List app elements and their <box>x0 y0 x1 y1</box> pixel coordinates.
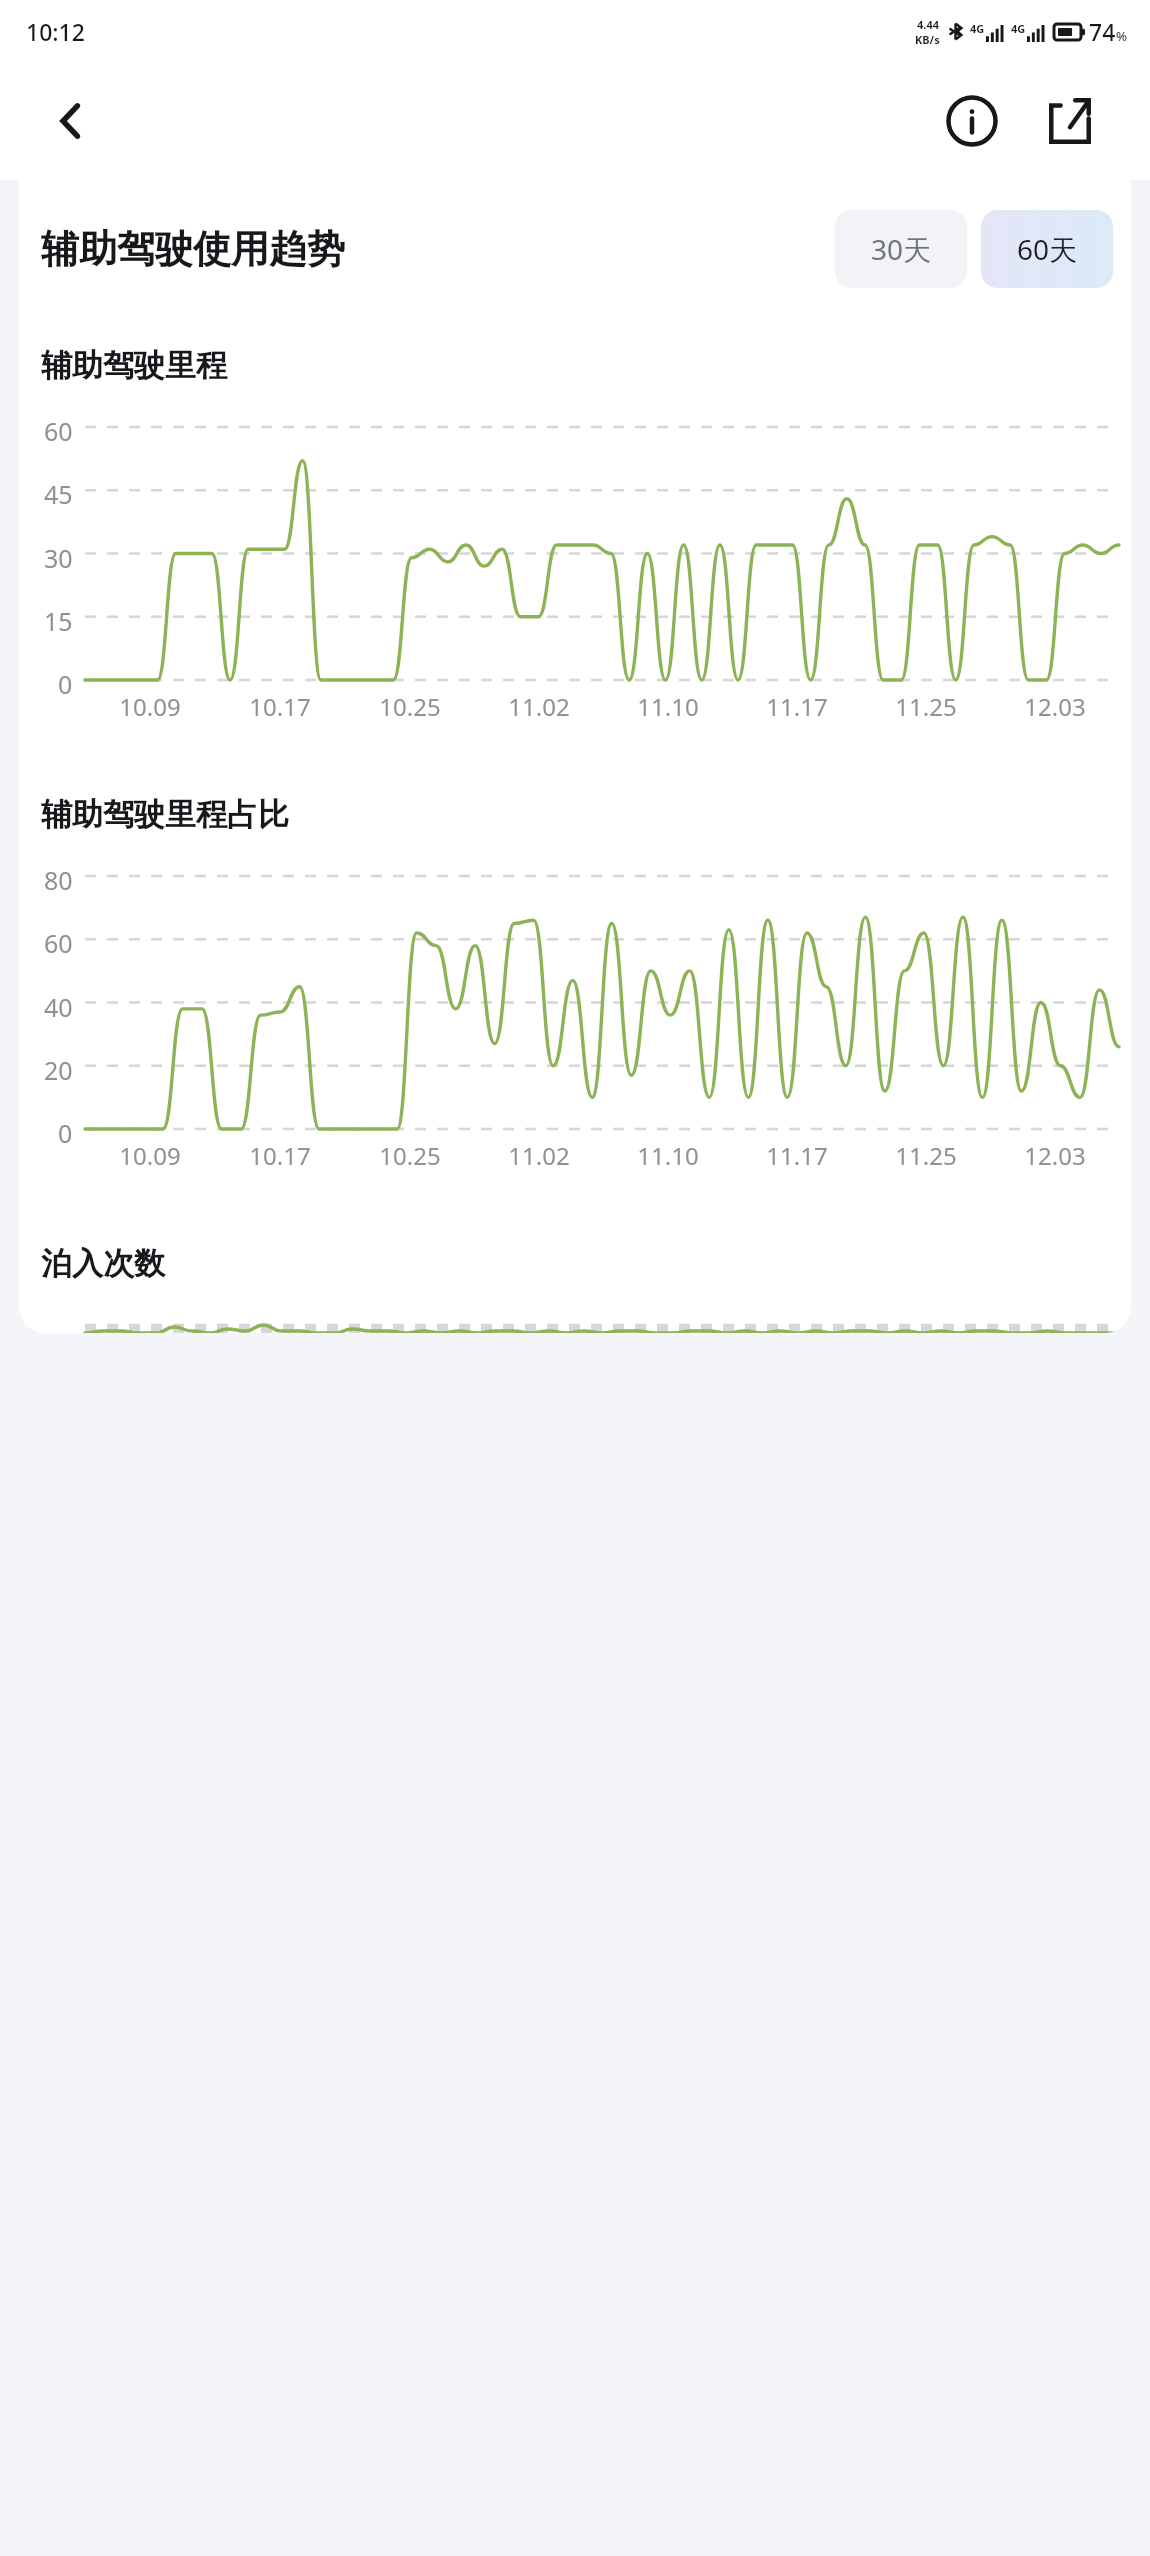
button[interactable]: Info <box>936 85 1008 157</box>
staticText: 40 <box>44 990 73 1024</box>
button[interactable]: 30天 <box>835 210 967 288</box>
staticText: 辅助驾驶里程 <box>41 346 227 385</box>
staticText: % <box>1116 27 1128 45</box>
staticText: 0 <box>58 667 73 701</box>
staticText: 12.03 <box>1024 1139 1086 1172</box>
staticText: 11.25 <box>895 690 957 723</box>
staticText: 12.03 <box>1024 690 1086 723</box>
staticText: 11.17 <box>766 690 828 723</box>
staticText: 10:12 <box>26 16 85 47</box>
staticText: 74 <box>1089 16 1116 47</box>
staticText: 4G <box>970 21 985 36</box>
staticText: 60 <box>44 414 73 448</box>
staticText: 10.17 <box>249 690 311 723</box>
staticText: 11.25 <box>895 1139 957 1172</box>
staticText: 10.17 <box>249 1139 311 1172</box>
staticText: 辅助驾驶使用趋势 <box>41 225 345 273</box>
staticText: 4.44 <box>917 17 939 32</box>
staticText: 11.02 <box>508 690 570 723</box>
button[interactable]: Share <box>1034 85 1106 157</box>
staticText: 11.17 <box>766 1139 828 1172</box>
staticText: 20 <box>44 1053 73 1087</box>
staticText: 泊入次数 <box>41 1244 165 1283</box>
staticText: 10.09 <box>119 1139 181 1172</box>
staticText: 0 <box>58 1116 73 1150</box>
staticText: 30 <box>44 541 73 575</box>
staticText: 10.25 <box>379 690 441 723</box>
button[interactable]: Back <box>36 86 106 156</box>
staticText: 11.10 <box>637 690 699 723</box>
staticText: 辅助驾驶里程占比 <box>41 795 289 834</box>
staticText: KB/s <box>915 32 940 47</box>
staticText: 60天 <box>1017 230 1078 268</box>
staticText: 10.25 <box>379 1139 441 1172</box>
staticText: 10.09 <box>119 690 181 723</box>
staticText: 15 <box>44 604 73 638</box>
staticText: 11.10 <box>637 1139 699 1172</box>
staticText: 4G <box>1011 21 1026 36</box>
staticText: 30天 <box>871 230 932 268</box>
button[interactable]: 60天 <box>981 210 1113 288</box>
staticText: 80 <box>44 863 73 897</box>
staticText: 11.02 <box>508 1139 570 1172</box>
staticText: 60 <box>44 926 73 960</box>
staticText: 45 <box>44 477 73 511</box>
